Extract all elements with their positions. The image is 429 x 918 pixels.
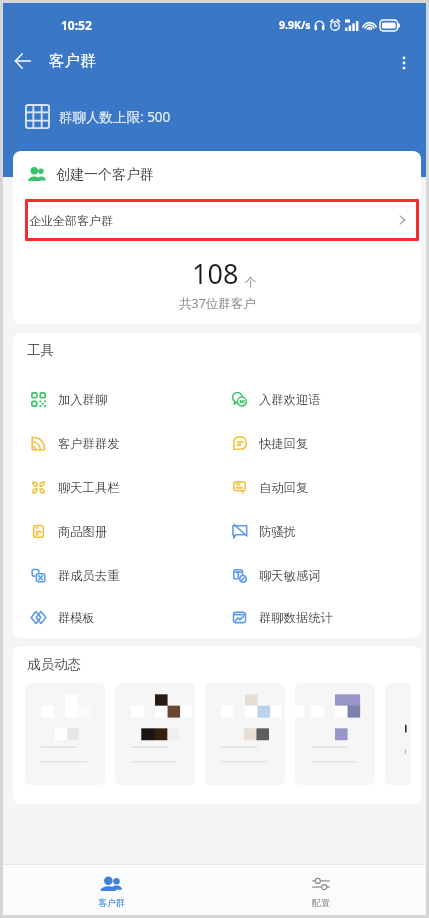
staticText: 群聊人数上限: 500 (59, 108, 171, 126)
staticText: 自动回复 (259, 480, 309, 495)
staticText: 入群欢迎语 (259, 392, 321, 407)
staticText: 个 (245, 275, 257, 289)
button[interactable]: 配置 (216, 865, 426, 915)
staticText: 商品图册 (58, 524, 108, 539)
staticText: 企业全部客户群 (29, 213, 113, 228)
staticText: 客户群 (98, 897, 125, 908)
staticText: 配置 (312, 897, 330, 908)
staticText: 108 (192, 255, 239, 292)
staticText: 客户群群发 (58, 436, 120, 451)
button[interactable]: 自动回复 (217, 465, 421, 509)
button[interactable] (385, 683, 411, 785)
button[interactable]: 商品图册 (13, 509, 217, 553)
button[interactable] (25, 683, 105, 785)
staticText: 成员动态 (27, 656, 81, 673)
staticText: 客户群 (49, 51, 96, 71)
staticText: 加入群聊 (58, 392, 108, 407)
staticText: 聊天敏感词 (259, 568, 321, 583)
button[interactable]: Back (0, 39, 45, 83)
staticText: 10:52 (61, 17, 92, 33)
button[interactable]: 聊天工具栏 (13, 465, 217, 509)
staticText: 防骚扰 (259, 524, 296, 539)
button[interactable]: 客户群 (6, 865, 216, 915)
staticText: 9.9K/s (279, 18, 311, 32)
button[interactable] (205, 683, 285, 785)
button[interactable]: 创建一个客户群 (28, 151, 421, 199)
button[interactable]: 防骚扰 (217, 509, 421, 553)
staticText: 聊天工具栏 (58, 480, 120, 495)
button[interactable] (295, 683, 375, 785)
staticText: 群聊数据统计 (259, 610, 333, 625)
staticText: 共37位群客户 (179, 295, 256, 312)
button[interactable]: 入群欢迎语 (217, 377, 421, 421)
button[interactable]: 群聊人数上限: 500 (25, 85, 426, 148)
button[interactable]: 客户群群发 (13, 421, 217, 465)
button[interactable]: More options (382, 41, 426, 85)
button[interactable]: 加入群聊 (13, 377, 217, 421)
button[interactable] (115, 683, 195, 785)
button[interactable]: 快捷回复 (217, 421, 421, 465)
button[interactable]: 聊天敏感词 (217, 553, 421, 597)
button[interactable]: 群模板 (13, 597, 217, 638)
staticText: 创建一个客户群 (56, 166, 154, 184)
button[interactable]: 群聊数据统计 (217, 597, 421, 638)
staticText: 群成员去重 (58, 568, 120, 583)
button[interactable]: 群成员去重 (13, 553, 217, 597)
staticText: 群模板 (58, 610, 95, 625)
staticText: 工具 (27, 342, 54, 359)
button[interactable]: 企业全部客户群 (25, 199, 419, 241)
staticText: 快捷回复 (259, 436, 309, 451)
